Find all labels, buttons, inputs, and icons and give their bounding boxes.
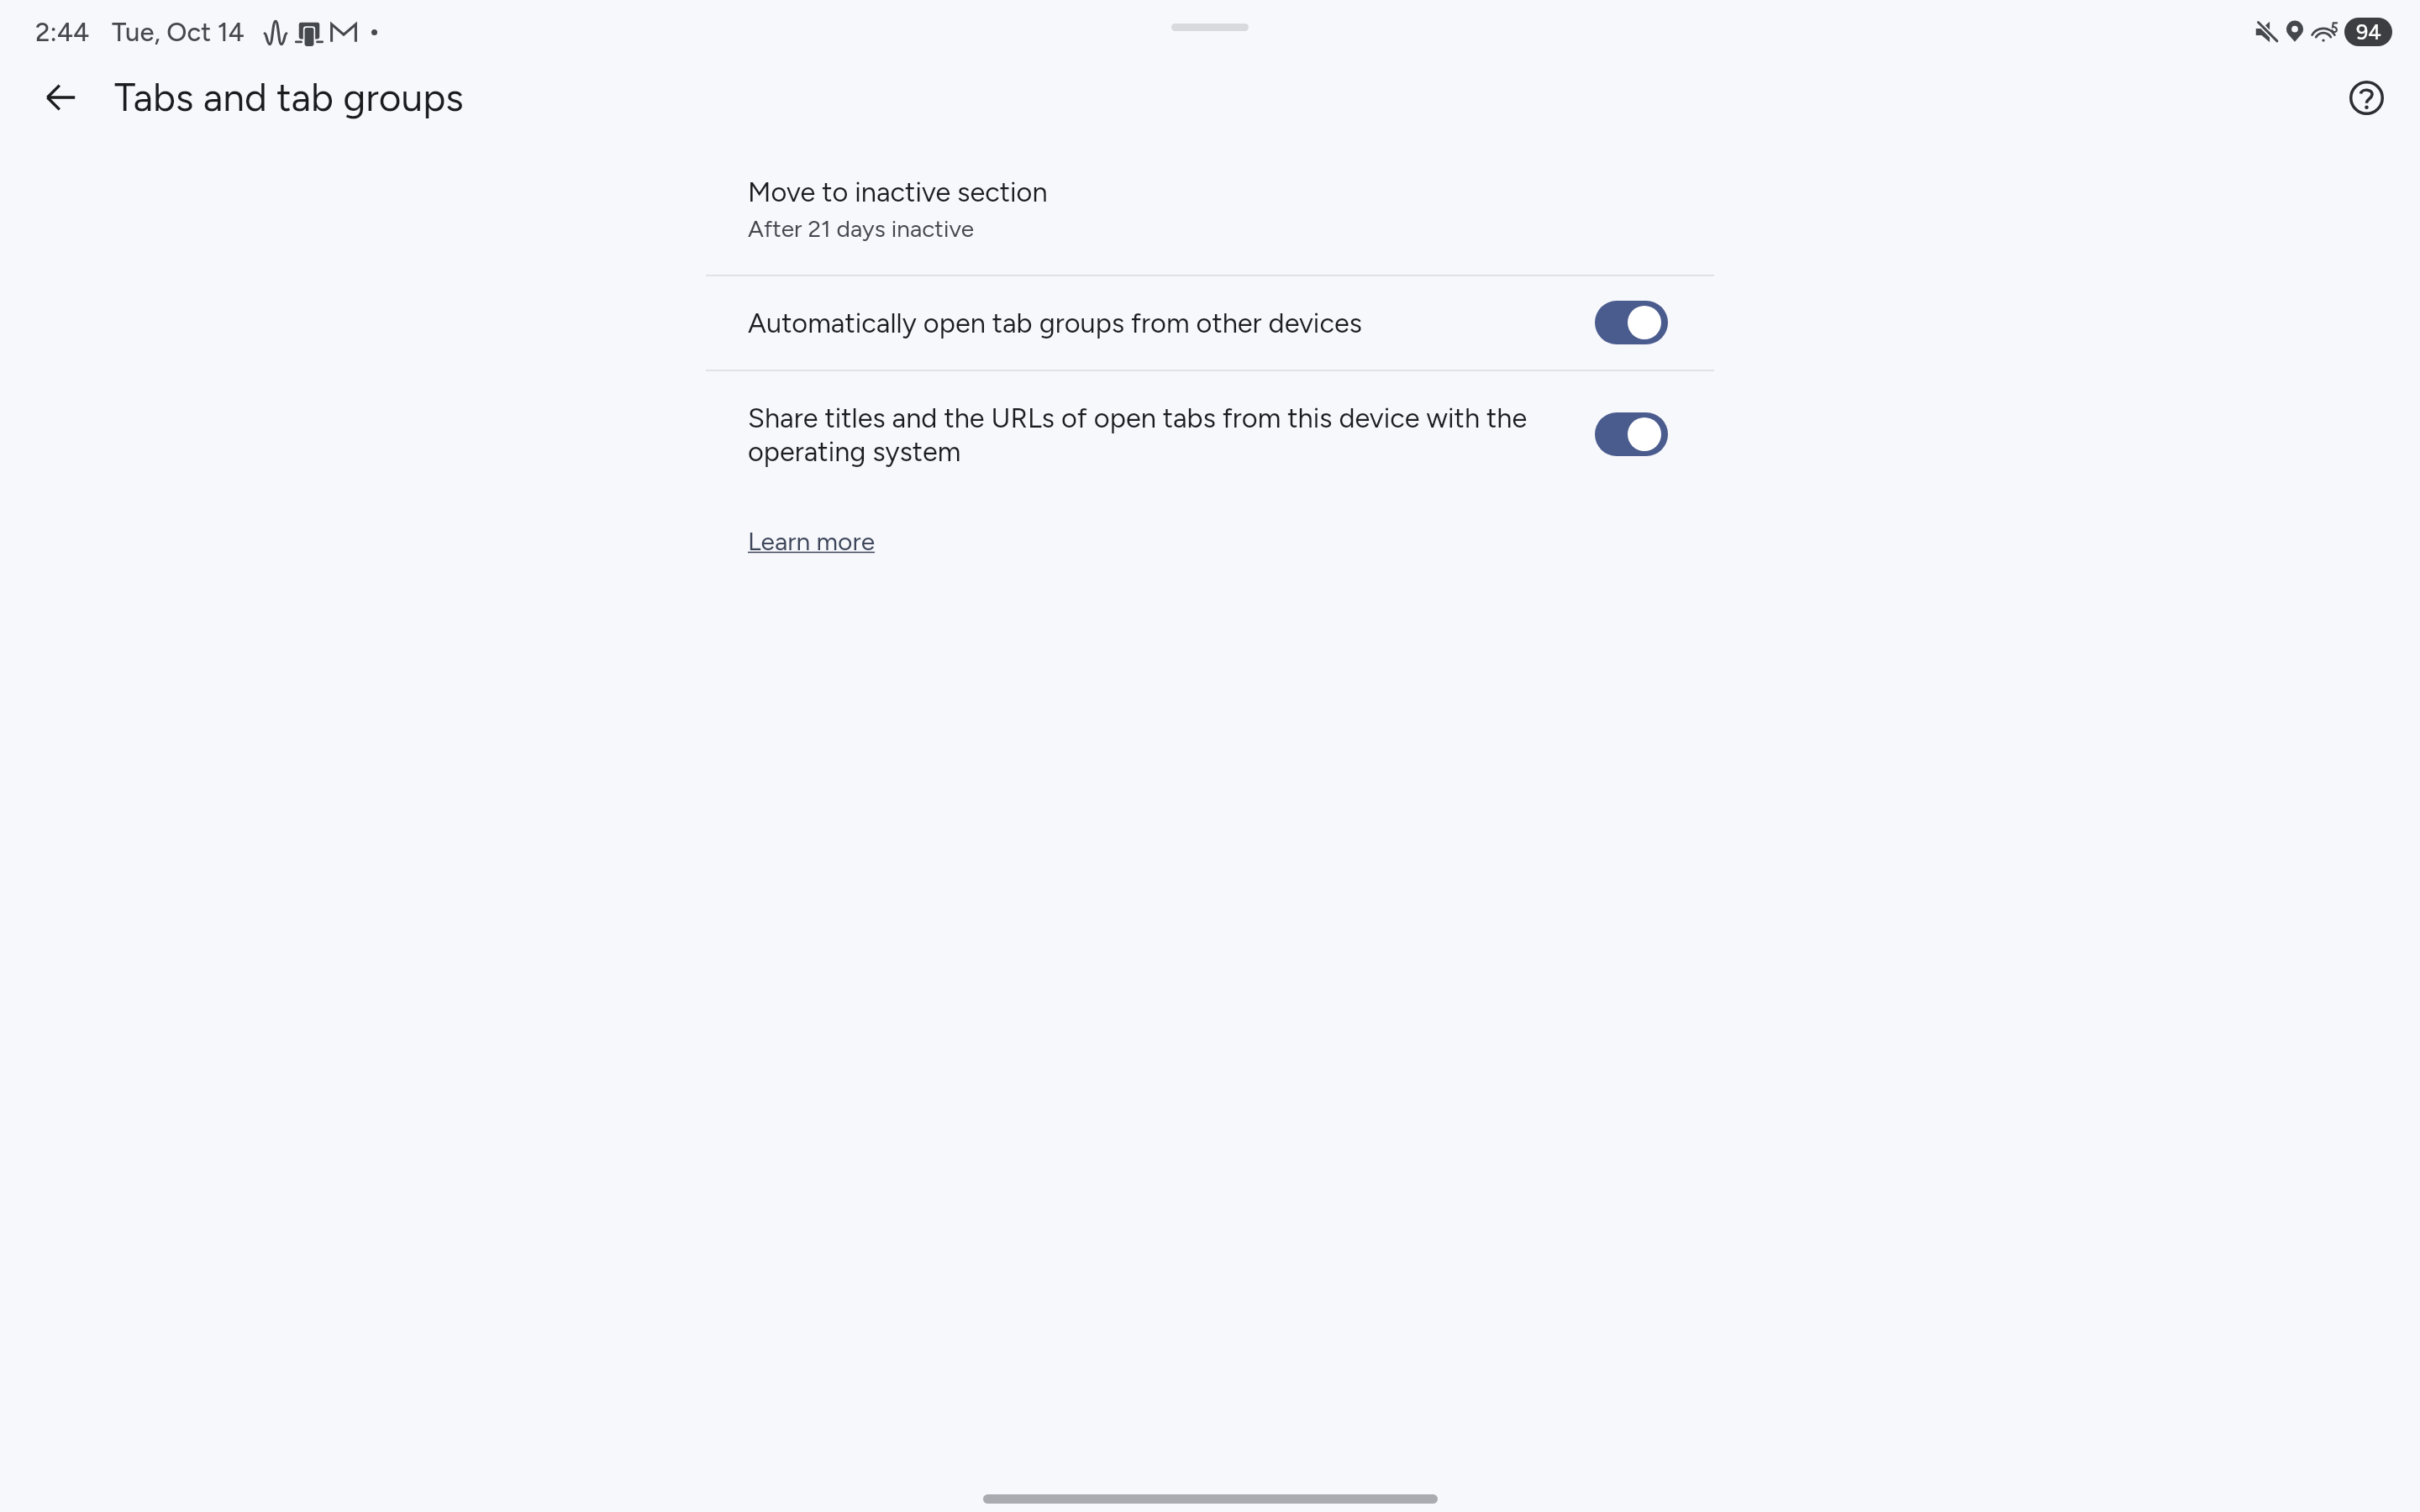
button[interactable]: Toggle setting on [1595, 301, 1668, 344]
staticText: Automatically open tab groups from other… [748, 307, 1561, 339]
button[interactable]: Share titles and the URLs of open tabs f… [706, 371, 1714, 499]
button[interactable]: Toggle setting on [1595, 412, 1668, 456]
staticText: Tabs and tab groups [114, 74, 464, 120]
staticText: Share titles and the URLs of open tabs f… [748, 402, 1561, 469]
staticText: Learn more [748, 526, 876, 556]
staticText: After 21 days inactive [748, 214, 974, 243]
staticText: Tue, Oct 14 [112, 17, 245, 48]
button[interactable]: Help [2326, 62, 2407, 133]
button[interactable]: Back [20, 62, 101, 133]
staticText: 2:44 [35, 17, 90, 48]
staticText: Move to inactive section [748, 176, 1048, 208]
button[interactable]: Move to inactive section [706, 133, 1714, 275]
button[interactable]: Automatically open tab groups from other… [706, 276, 1714, 370]
button[interactable]: Learn more [748, 526, 876, 556]
staticText: 94 [2356, 19, 2381, 45]
